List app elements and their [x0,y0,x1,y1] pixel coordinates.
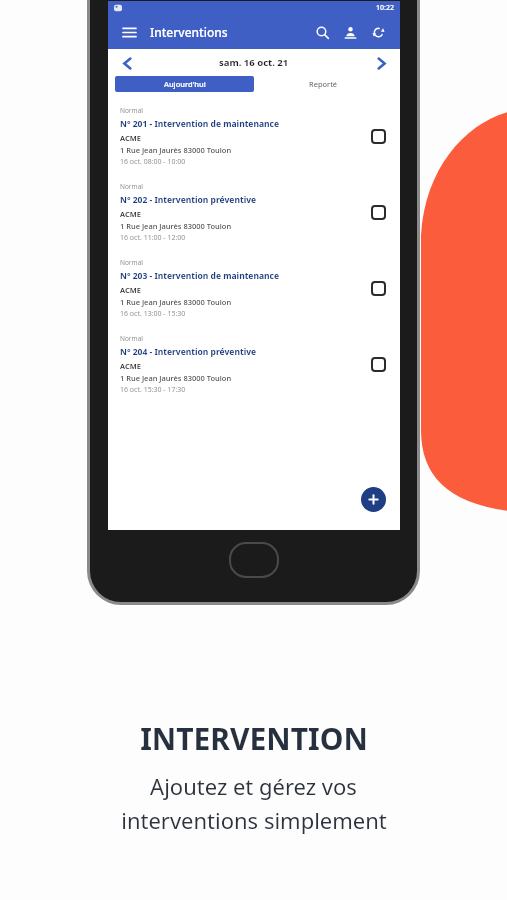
button[interactable]: Previous day [116,52,138,74]
staticText: 16 oct. 13:00 - 15:30 [120,309,186,319]
button[interactable]: Select intervention [366,124,390,148]
button[interactable]: Add intervention [361,487,386,512]
button[interactable]: Select intervention [366,200,390,224]
staticText: 16 oct. 08:00 - 10:00 [120,157,186,167]
button[interactable]: Map [338,20,362,44]
staticText: Reporté [309,79,338,89]
button[interactable]: Normal [108,174,400,250]
button[interactable]: Normal [108,326,400,402]
button[interactable]: Select intervention [366,352,390,376]
staticText: ACME [120,133,141,143]
button[interactable]: Menu [118,21,140,43]
staticText: N° 203 - Intervention de maintenance [120,270,280,282]
staticText: 1 Rue Jean Jaurès 83000 Toulon [120,297,232,307]
staticText: 1 Rue Jean Jaurès 83000 Toulon [120,373,232,383]
button[interactable]: Next day [370,52,392,74]
staticText: interventions simplement [121,805,387,835]
staticText: 16 oct. 15:30 - 17:30 [120,385,186,395]
button[interactable]: Normal [108,250,400,326]
staticText: N° 204 - Intervention préventive [120,346,257,358]
staticText: 10:22 [376,3,394,13]
staticText: N° 202 - Intervention préventive [120,194,257,206]
staticText: INTERVENTION [140,718,368,759]
staticText: Normal [120,182,143,191]
button[interactable]: Refresh [366,20,390,44]
staticText: N° 201 - Intervention de maintenance [120,118,280,130]
staticText: 16 oct. 11:00 - 12:00 [120,233,186,243]
button[interactable]: Select intervention [366,276,390,300]
staticText: 1 Rue Jean Jaurès 83000 Toulon [120,221,232,231]
button[interactable]: Normal [108,98,400,174]
button[interactable]: Reporté [254,76,393,92]
staticText: 1 Rue Jean Jaurès 83000 Toulon [120,145,232,155]
staticText: ACME [120,361,141,371]
staticText: sam. 16 oct. 21 [219,56,289,69]
staticText: Normal [120,106,143,115]
staticText: Normal [120,258,143,267]
button[interactable]: Search [310,20,334,44]
staticText: ACME [120,285,141,295]
staticText: Interventions [150,24,228,40]
staticText: Aujourd'hui [164,79,206,89]
staticText: ACME [120,209,141,219]
button[interactable]: Aujourd'hui [115,76,254,92]
staticText: Normal [120,334,143,343]
staticText: Ajoutez et gérez vos [150,771,357,801]
